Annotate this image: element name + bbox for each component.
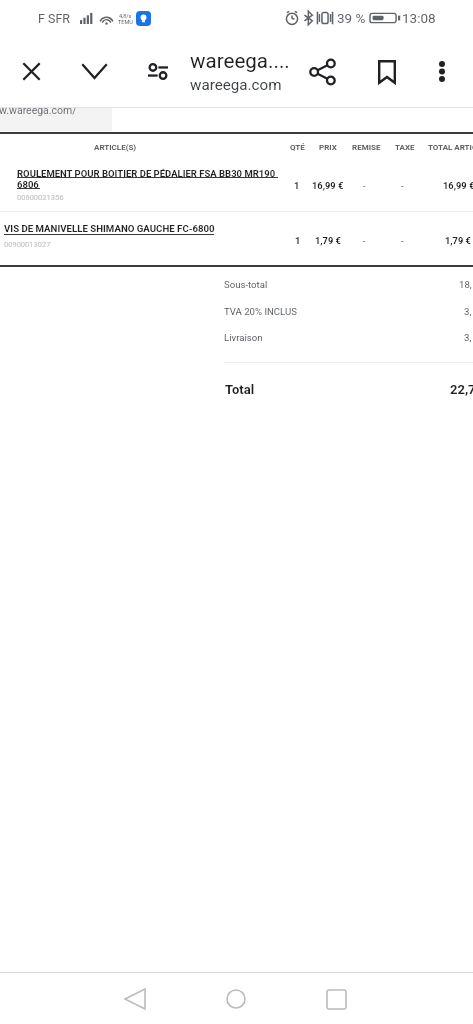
staticText: 16,99 € — [312, 180, 344, 191]
staticText: wareega.... — [190, 49, 290, 73]
staticText: 4,8/s — [119, 13, 132, 19]
button[interactable]: Recent apps — [312, 975, 360, 1023]
staticText: TEMU — [118, 19, 133, 25]
staticText: - — [401, 235, 404, 246]
staticText: TVA 20% INCLUS — [224, 306, 297, 317]
staticText: 1,79 € — [445, 235, 471, 246]
staticText: wareega.com — [190, 76, 282, 94]
staticText: 00900013027 — [4, 240, 51, 249]
staticText: 16,99 € — [443, 180, 473, 191]
staticText: - — [401, 180, 404, 191]
staticText: TOTAL ARTICLE — [428, 143, 473, 152]
staticText: ROULEMENT POUR BOITIER DE PÉDALIER FSA B… — [17, 168, 283, 190]
staticText: Sous-total — [224, 279, 268, 290]
staticText: 22,7 — [450, 382, 473, 397]
staticText: 3, — [464, 332, 472, 343]
button[interactable]: Page info — [134, 48, 181, 95]
staticText: 39 % — [337, 10, 366, 26]
staticText: VIS DE MANIVELLE SHIMANO GAUCHE FC-6800 — [4, 223, 215, 234]
button[interactable]: Back — [111, 975, 159, 1023]
staticText: - — [363, 235, 366, 246]
button[interactable]: More options — [418, 48, 465, 95]
staticText: F SFR — [38, 11, 71, 26]
staticText: ARTICLE(S) — [94, 143, 137, 152]
button[interactable]: Bookmark — [363, 48, 410, 95]
staticText: 13:08 — [402, 10, 436, 26]
staticText: 00600021356 — [17, 193, 64, 202]
staticText: 1,79 € — [315, 235, 341, 246]
button[interactable]: Expand — [71, 48, 118, 95]
staticText: 1 — [294, 180, 300, 191]
button[interactable]: Close — [8, 48, 55, 95]
staticText: Livraison — [224, 332, 263, 343]
staticText: REMISE — [352, 143, 381, 152]
staticText: 18, — [459, 279, 472, 290]
button[interactable]: Share — [299, 48, 346, 95]
staticText: - — [363, 180, 366, 191]
staticText: Total — [225, 382, 255, 397]
staticText: QTÉ — [290, 143, 305, 152]
staticText: w.wareega.com/ — [0, 104, 77, 116]
staticText: 1 — [295, 235, 301, 246]
staticText: PRIX — [319, 143, 337, 152]
staticText: 3, — [464, 306, 472, 317]
button[interactable]: Home — [212, 975, 260, 1023]
staticText: TAXE — [395, 143, 415, 152]
